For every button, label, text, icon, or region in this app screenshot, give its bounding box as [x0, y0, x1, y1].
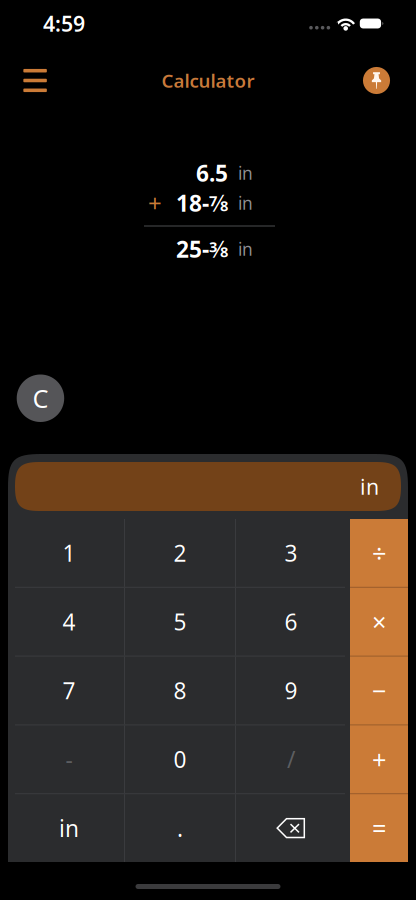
- button[interactable]: +: [350, 725, 408, 793]
- staticText: ⁄: [217, 234, 220, 264]
- button[interactable]: 7: [14, 657, 124, 724]
- staticText: 7: [209, 191, 217, 210]
- staticText: in: [238, 237, 253, 260]
- staticText: 1: [62, 538, 75, 568]
- button[interactable]: .: [125, 794, 235, 862]
- button[interactable]: −: [350, 657, 408, 724]
- staticText: −: [372, 674, 386, 707]
- staticText: 3: [209, 237, 217, 256]
- staticText: .: [177, 813, 183, 843]
- staticText: 5: [173, 607, 186, 637]
- staticText: 7: [62, 675, 75, 705]
- staticText: in: [360, 472, 379, 501]
- button[interactable]: 8: [125, 657, 235, 724]
- button[interactable]: 4: [14, 588, 124, 656]
- staticText: 2: [173, 538, 186, 568]
- staticText: Calculator: [161, 68, 254, 93]
- staticText: +: [148, 187, 162, 219]
- staticText: 4:59: [43, 9, 85, 38]
- staticText: 4: [62, 607, 75, 637]
- staticText: in: [238, 161, 253, 184]
- staticText: +: [372, 742, 386, 776]
- button[interactable]: in: [14, 794, 124, 862]
- staticText: ÷: [372, 536, 386, 570]
- staticText: 8: [220, 242, 228, 261]
- staticText: -: [65, 744, 72, 774]
- staticText: ⁄: [217, 188, 220, 218]
- button[interactable]: ×: [350, 588, 408, 656]
- button[interactable]: =: [350, 794, 408, 862]
- staticText: /: [287, 744, 295, 774]
- staticText: 6.5: [196, 158, 228, 188]
- staticText: 18-: [176, 188, 209, 218]
- button[interactable]: 1: [14, 519, 124, 587]
- button[interactable]: 9: [236, 657, 346, 724]
- button[interactable]: 2: [125, 519, 235, 587]
- staticText: =: [372, 811, 386, 845]
- button[interactable]: 6: [236, 588, 346, 656]
- button[interactable]: Menu: [13, 57, 58, 103]
- staticText: 0: [173, 744, 186, 774]
- button[interactable]: /: [236, 725, 346, 793]
- button[interactable]: Pin: [354, 57, 399, 103]
- staticText: 3: [284, 538, 297, 568]
- button[interactable]: 0: [125, 725, 235, 793]
- staticText: 6: [284, 607, 297, 637]
- staticText: 25-: [176, 234, 209, 264]
- button[interactable]: 5: [125, 588, 235, 656]
- button[interactable]: 3: [236, 519, 346, 587]
- staticText: 9: [284, 675, 297, 705]
- staticText: in: [238, 191, 253, 214]
- button[interactable]: C: [17, 374, 64, 422]
- staticText: ×: [372, 605, 386, 638]
- staticText: in: [59, 813, 79, 843]
- button[interactable]: Delete: [236, 794, 346, 862]
- staticText: C: [32, 381, 48, 415]
- staticText: 8: [173, 675, 186, 705]
- button[interactable]: ÷: [350, 519, 408, 587]
- staticText: 8: [220, 196, 228, 215]
